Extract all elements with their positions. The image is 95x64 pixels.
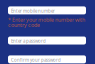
button[interactable]: Confirm your password: [8, 55, 86, 63]
staticText: Confirm your password: [11, 57, 61, 63]
staticText: Enter mobile number: [11, 8, 55, 14]
button[interactable]: Enter mobile number: [8, 6, 86, 14]
staticText: * Enter your mobile number with country …: [8, 16, 85, 28]
staticText: Enter a password: [11, 38, 46, 44]
button[interactable]: Enter a password: [8, 36, 86, 44]
